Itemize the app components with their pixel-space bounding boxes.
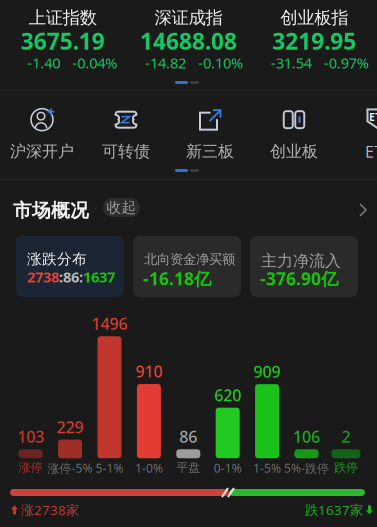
staticText: 深证成指 [154, 7, 222, 28]
button[interactable]: 创业板指 [251, 0, 377, 80]
staticText: 上证指数 [29, 7, 97, 28]
staticText: ETF [365, 141, 377, 162]
staticText: -376.90亿 [260, 267, 338, 290]
button[interactable]: 沪深开户 [0, 101, 84, 167]
staticText: 103 [17, 426, 44, 447]
button[interactable]: 创业板 [252, 101, 336, 167]
staticText: 106 [293, 426, 320, 447]
staticText: 5%-跌停 [284, 460, 329, 476]
staticText: 1-5% [253, 460, 281, 476]
staticText: 910 [135, 361, 162, 382]
button[interactable]: ETF [336, 101, 377, 167]
staticText: 2 [341, 426, 350, 447]
staticText: -1.40 [27, 53, 60, 72]
staticText: 3219.95 [272, 26, 356, 56]
staticText: 可转债 [102, 142, 150, 161]
button[interactable]: 上证指数 [0, 0, 126, 80]
staticText: 北向资金净买额 [144, 251, 235, 267]
staticText: 涨停-5% [48, 460, 93, 476]
staticText: -0.04% [72, 53, 117, 72]
staticText: 14688.08 [140, 26, 237, 56]
staticText: 新三板 [186, 142, 234, 161]
button[interactable]: 深证成指 [126, 0, 251, 80]
staticText: 跌1637家 [305, 501, 363, 519]
staticText: 收起 [106, 198, 136, 216]
staticText: 3675.19 [21, 26, 105, 56]
button[interactable]: 北向资金净买额 [133, 236, 241, 297]
staticText: 1637 [83, 267, 115, 286]
staticText: -14.82 [145, 53, 186, 72]
staticText: 620 [214, 384, 241, 406]
staticText: 创业板 [270, 142, 318, 161]
staticText: 5-1% [95, 460, 123, 476]
staticText: 沪深开户 [10, 142, 74, 161]
staticText: -31.54 [271, 53, 312, 72]
staticText: 1496 [91, 313, 127, 334]
button[interactable]: 新三板 [168, 101, 252, 167]
staticText: 涨2738家 [21, 501, 79, 519]
staticText: 涨停 [19, 460, 43, 475]
staticText: -0.10% [198, 53, 243, 72]
staticText: ETF [369, 110, 377, 124]
staticText: 2738 [27, 267, 59, 286]
staticText: 1-0% [135, 460, 163, 476]
staticText: 229 [57, 416, 84, 437]
staticText: 86 [179, 426, 197, 447]
staticText: 主力净流入 [261, 251, 341, 271]
staticText: 创业板指 [280, 7, 348, 28]
staticText: :86: [59, 267, 83, 286]
button[interactable]: 收起 [103, 198, 140, 217]
staticText: 平盘 [176, 460, 200, 475]
button[interactable]: 涨跌分布 [16, 236, 124, 297]
button[interactable]: More [353, 197, 373, 222]
staticText: 909 [254, 361, 281, 382]
staticText: 0-1% [214, 460, 242, 476]
staticText: 涨跌分布 [27, 250, 87, 268]
staticText: -0.97% [324, 53, 369, 72]
button[interactable]: 可转债 [84, 101, 168, 167]
button[interactable]: 主力净流入 [250, 236, 358, 297]
staticText: -16.18亿 [143, 267, 211, 290]
staticText: 市场概况 [13, 199, 89, 222]
staticText: 跌停 [334, 460, 358, 475]
